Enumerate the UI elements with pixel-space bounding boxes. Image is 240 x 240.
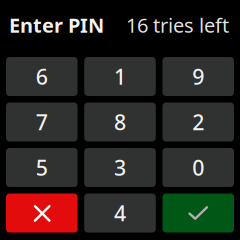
button[interactable]: 1 [84,57,156,96]
button[interactable]: 9 [162,57,234,96]
button[interactable]: 8 [84,102,156,141]
staticText: 4 [114,199,126,227]
button[interactable]: 2 [162,102,234,141]
staticText: 7 [36,108,48,136]
staticText: 3 [114,153,126,182]
staticText: 1 [114,62,126,91]
button[interactable]: 3 [84,148,156,187]
button[interactable]: 7 [6,102,77,141]
button[interactable]: Confirm [162,193,234,232]
button[interactable]: Cancel [6,193,77,232]
staticText: 6 [36,62,48,91]
button[interactable]: 0 [162,148,234,187]
staticText: 16 tries left [126,12,229,38]
button[interactable]: 5 [6,148,77,187]
staticText: 9 [192,62,204,91]
staticText: 8 [114,108,126,136]
staticText: 0 [192,153,204,182]
staticText: 2 [192,108,204,136]
staticText: 5 [36,153,48,182]
button[interactable]: 4 [84,193,156,232]
button[interactable]: 6 [6,57,77,96]
staticText: Enter PIN [9,12,104,38]
